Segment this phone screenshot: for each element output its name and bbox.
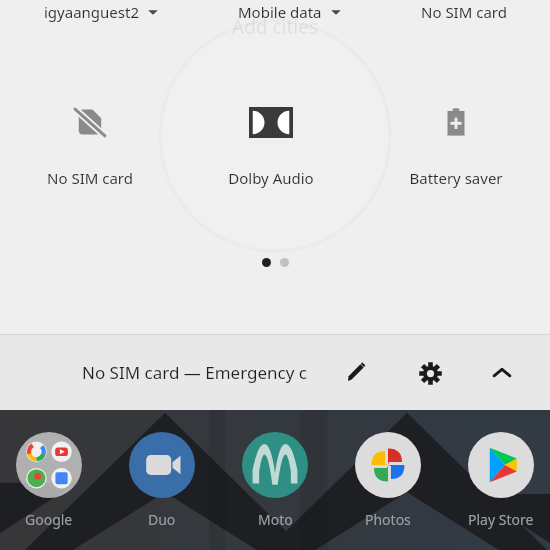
staticText: Play Store [468,510,534,529]
button[interactable]: Moto [240,430,310,529]
button[interactable]: Play Store [466,430,536,529]
button[interactable]: No SIM card [47,96,133,192]
button[interactable]: Dolby Audio [228,96,314,192]
staticText: igyaanguest2 [44,2,139,22]
button[interactable]: Edit [340,357,372,389]
button[interactable]: Collapse [483,354,521,392]
button[interactable]: Battery saver [409,96,503,192]
button[interactable]: igyaanguest2 [40,0,163,24]
staticText: Photos [365,510,411,529]
staticText: Moto [258,510,293,529]
staticText: No SIM card [47,168,133,188]
staticText: No SIM card [421,2,507,22]
staticText: Battery saver [409,168,503,188]
button[interactable]: No SIM card [417,0,511,24]
staticText: Dolby Audio [228,168,314,188]
button[interactable]: Google [14,430,84,529]
button[interactable]: No SIM card — Emergency c [82,361,307,384]
staticText: Add cities [232,14,319,38]
button[interactable]: Photos [353,430,423,529]
button[interactable]: Duo [127,430,197,529]
button[interactable]: Mobile data [234,0,346,24]
staticText: Google [25,510,73,529]
button[interactable]: Settings [410,353,450,393]
staticText: Duo [148,510,176,529]
staticText: Mobile data [238,2,322,22]
